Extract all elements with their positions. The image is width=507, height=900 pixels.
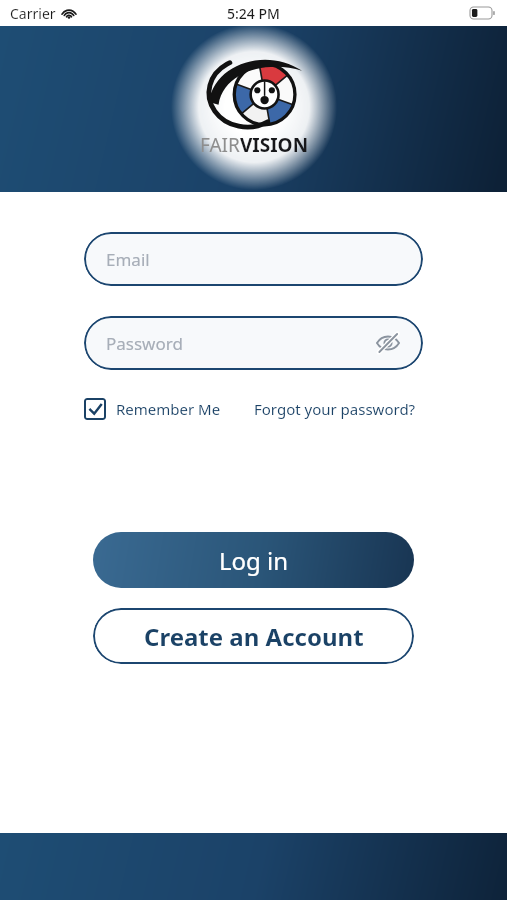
- staticText: Carrier: [10, 4, 56, 23]
- staticText: VISION: [240, 132, 309, 158]
- button[interactable]: Remember Me: [84, 398, 221, 420]
- staticText: Create an Account: [144, 620, 364, 653]
- staticText: Password: [106, 332, 373, 355]
- button[interactable]: Show password: [373, 328, 403, 358]
- staticText: 5:24 PM: [227, 4, 280, 23]
- button[interactable]: Forgot your password?: [254, 399, 416, 419]
- staticText: FAIR: [200, 132, 240, 158]
- staticText: Forgot your password?: [254, 399, 416, 419]
- staticText: Remember Me: [116, 399, 221, 419]
- button[interactable]: Password: [84, 316, 423, 370]
- button[interactable]: Create an Account: [93, 608, 414, 664]
- button[interactable]: Email: [84, 232, 423, 286]
- staticText: Log in: [219, 544, 289, 577]
- button[interactable]: Log in: [93, 532, 414, 588]
- staticText: Email: [106, 248, 403, 271]
